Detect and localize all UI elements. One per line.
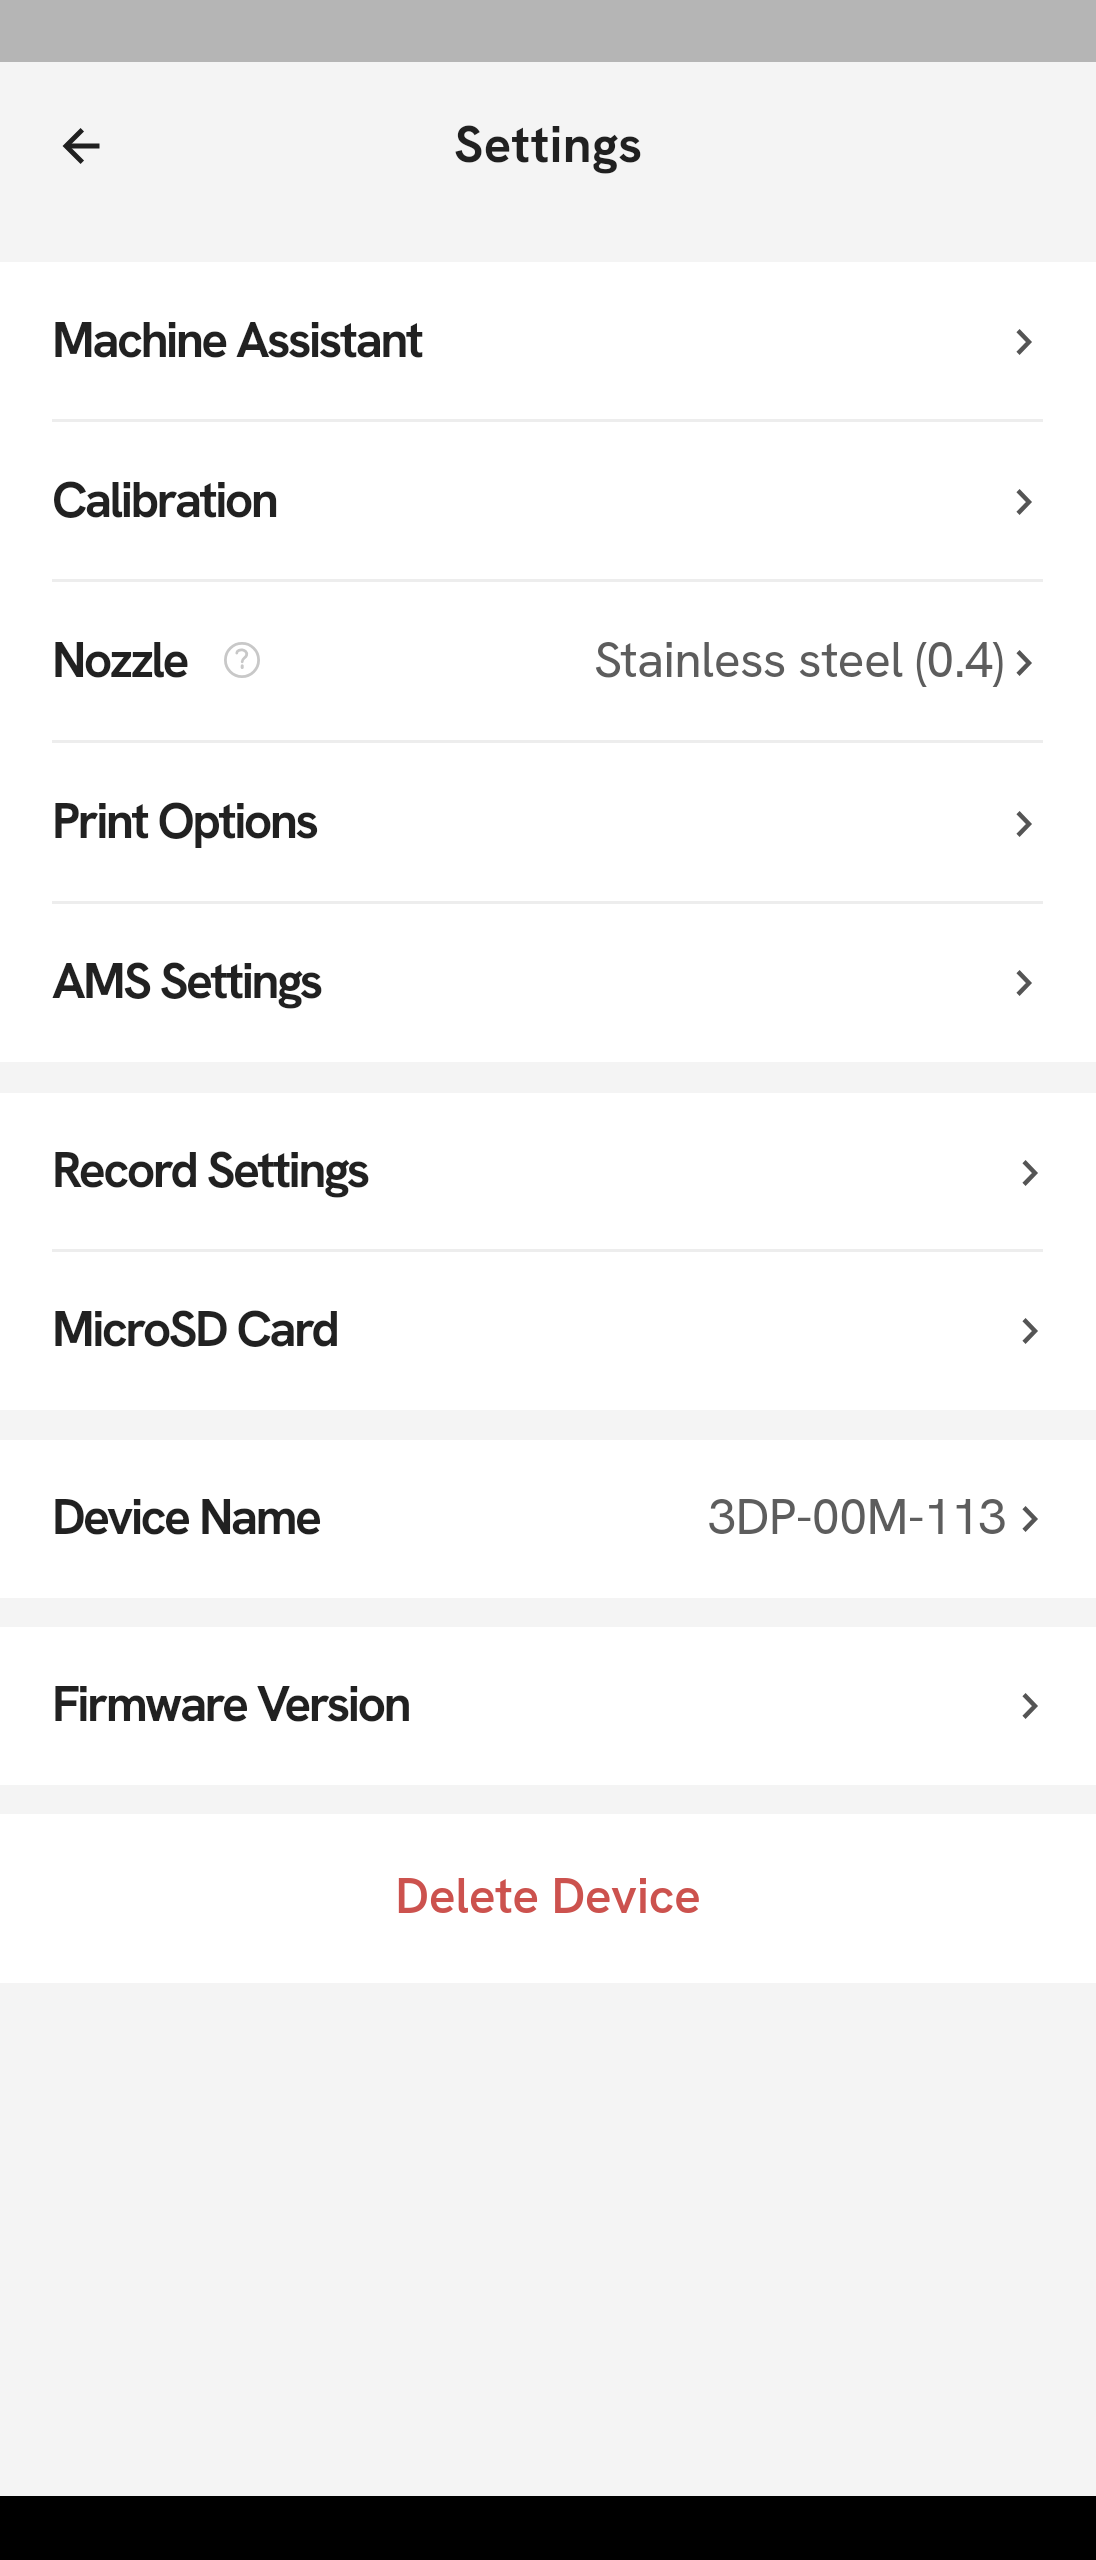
button[interactable]: Print Options	[0, 743, 1096, 904]
staticText: AMS Settings	[52, 948, 321, 1013]
staticText: Machine Assistant	[52, 307, 422, 372]
staticText: Calibration	[52, 467, 277, 532]
staticText: Nozzle	[52, 627, 188, 692]
button[interactable]: Device Name	[0, 1440, 1096, 1598]
staticText: 3DP-00M-113	[708, 1484, 1006, 1549]
button[interactable]: Firmware Version	[0, 1627, 1096, 1785]
staticText: Print Options	[52, 788, 317, 853]
staticText: Record Settings	[52, 1137, 368, 1202]
button[interactable]: MicroSD Card	[0, 1252, 1096, 1410]
button[interactable]: AMS Settings	[0, 904, 1096, 1062]
staticText: Delete Device	[395, 1863, 701, 1928]
button[interactable]: Record Settings	[0, 1093, 1096, 1252]
button[interactable]: Calibration	[0, 422, 1096, 582]
staticText: Stainless steel (0.4)	[594, 627, 1004, 692]
staticText: Settings	[454, 111, 643, 177]
button[interactable]: Delete Device	[0, 1814, 1096, 1983]
button[interactable]: Nozzle	[0, 582, 1096, 743]
staticText: MicroSD Card	[52, 1296, 338, 1361]
staticText: Device Name	[52, 1484, 320, 1549]
button[interactable]: Back	[36, 98, 132, 194]
button[interactable]: Machine Assistant	[0, 262, 1096, 422]
staticText: Firmware Version	[52, 1671, 409, 1736]
